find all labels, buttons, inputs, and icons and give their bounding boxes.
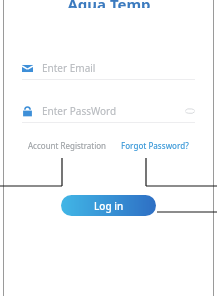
button[interactable]: Forgot Password?: [121, 140, 189, 151]
button[interactable]: Password: [22, 100, 195, 122]
button[interactable]: Log in: [61, 195, 156, 216]
staticText: Aqua Temp: [67, 0, 151, 8]
button[interactable]: Show password: [185, 106, 195, 116]
other: Email: [22, 63, 33, 74]
button[interactable]: Email: [22, 57, 195, 79]
other: Password: [22, 106, 33, 117]
staticText: Enter PassWord: [42, 104, 117, 118]
staticText: Forgot Password?: [121, 140, 189, 151]
staticText: Log in: [94, 199, 124, 213]
button[interactable]: Account Registration: [28, 140, 107, 151]
staticText: Account Registration: [28, 140, 107, 151]
staticText: Enter Email: [42, 61, 96, 75]
